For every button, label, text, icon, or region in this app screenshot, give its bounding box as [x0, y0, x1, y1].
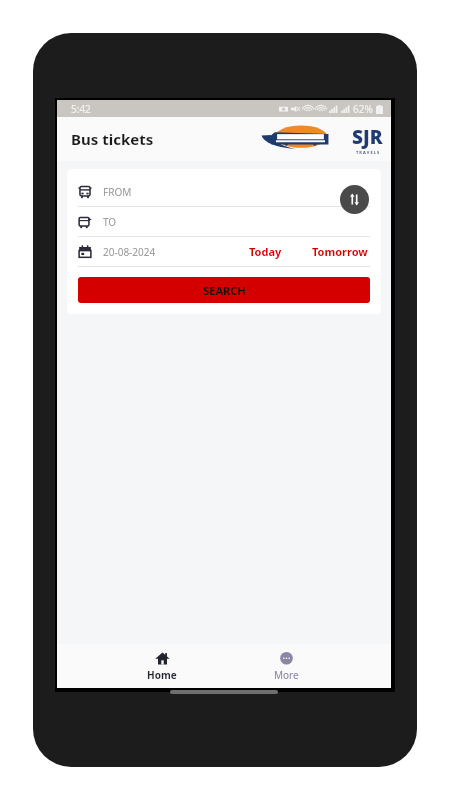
staticText: TO [103, 215, 117, 229]
staticText: SJR [352, 124, 383, 150]
staticText: Home [147, 668, 177, 682]
staticText: T R A V E L S [356, 150, 380, 155]
button[interactable]: 20-08-2024 [103, 245, 156, 259]
staticText: Today [249, 244, 282, 259]
button[interactable]: Tomorrow [310, 244, 370, 259]
staticText: Tomorrow [312, 244, 368, 259]
button[interactable]: Today [245, 244, 286, 259]
staticText: SEARCH [203, 283, 246, 298]
button[interactable]: Pick date [78, 245, 92, 259]
staticText: 20-08-2024 [103, 245, 156, 259]
staticText: 5:42 [71, 102, 91, 116]
button[interactable]: Swap from and to [340, 185, 369, 214]
staticText: More [274, 668, 299, 682]
button[interactable]: Home [116, 647, 208, 686]
button[interactable]: More [240, 647, 332, 686]
button[interactable]: SEARCH [78, 277, 370, 303]
button[interactable]: TO [67, 207, 381, 236]
staticText: 62% [353, 102, 373, 116]
staticText: FROM [103, 185, 132, 199]
button[interactable]: FROM [67, 177, 381, 206]
button[interactable]: SJR Travels logo [259, 122, 383, 156]
staticText: Bus tickets [71, 129, 154, 149]
